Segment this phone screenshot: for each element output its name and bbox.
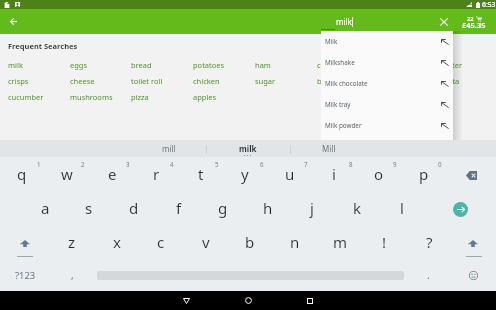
button[interactable]: milk [8, 60, 23, 70]
button[interactable]: x [95, 226, 139, 258]
staticText: e [108, 164, 117, 184]
staticText: b [245, 232, 255, 252]
button[interactable]: a [23, 192, 67, 224]
button[interactable]: i [312, 158, 356, 190]
button[interactable]: Milk [321, 31, 453, 52]
staticText: 7 [304, 160, 308, 168]
button[interactable]: cheese [70, 76, 95, 86]
button[interactable]: butter [440, 60, 462, 70]
button[interactable]: Clear search [431, 9, 456, 34]
button[interactable]: r [134, 158, 178, 190]
button[interactable]: Shift [451, 227, 495, 259]
button[interactable]: y [223, 158, 267, 190]
staticText: 4 [170, 160, 174, 168]
button[interactable]: sugar [255, 76, 276, 86]
staticText: mill [162, 143, 176, 154]
button[interactable]: l [380, 192, 424, 224]
button[interactable]: crisps [8, 76, 29, 86]
button[interactable]: Milk tray [321, 94, 453, 115]
staticText: 6:53 [482, 0, 496, 9]
button[interactable]: t [179, 158, 223, 190]
staticText: 9 [393, 160, 397, 168]
button[interactable]: cheese [317, 60, 342, 70]
button[interactable]: Back [172, 291, 200, 310]
button[interactable]: p [402, 158, 446, 190]
staticText: z [68, 232, 76, 252]
staticText: d [129, 198, 139, 218]
button[interactable]: pizza [131, 92, 149, 102]
button[interactable]: toilet roll [131, 76, 163, 86]
staticText: j [310, 198, 314, 218]
button[interactable]: ham [255, 60, 271, 70]
button[interactable]: u [268, 158, 312, 190]
button[interactable]: q [0, 158, 44, 190]
button[interactable]: Home [234, 291, 262, 310]
button[interactable]: g [201, 192, 245, 224]
button[interactable]: 22 [454, 9, 494, 34]
staticText: cucumber [8, 92, 44, 102]
staticText: bread [131, 60, 152, 70]
button[interactable]: Milk powder [321, 115, 453, 136]
staticText: chicken [193, 76, 220, 86]
staticText: o [374, 164, 384, 184]
staticText: q [17, 164, 27, 184]
staticText: 2 [81, 160, 85, 168]
button[interactable]: potatoes [193, 60, 225, 70]
button[interactable]: Emoji [451, 259, 495, 291]
staticText: r [153, 164, 160, 184]
button[interactable]: j [290, 192, 334, 224]
staticText: s [85, 198, 93, 218]
button[interactable]: e [90, 158, 134, 190]
button[interactable]: Recents [296, 291, 324, 310]
button[interactable]: Search [438, 193, 482, 225]
staticText: i [332, 164, 336, 184]
button[interactable]: eggs [70, 60, 88, 70]
staticText: m [333, 232, 348, 252]
staticText: apples [193, 92, 217, 102]
button[interactable]: mushrooms [70, 92, 113, 102]
button[interactable]: cucumber [8, 92, 44, 102]
button[interactable]: o [357, 158, 401, 190]
button[interactable]: pasta [440, 76, 460, 86]
button[interactable]: apples [193, 92, 217, 102]
button[interactable]: Back [1, 9, 26, 34]
button[interactable]: Backspace [449, 159, 493, 191]
button[interactable]: ? [407, 226, 451, 258]
staticText: Milk chocolate [325, 79, 368, 88]
button[interactable]: bread [131, 60, 152, 70]
button[interactable]: chicken [193, 76, 220, 86]
staticText: 3 [126, 160, 130, 168]
button[interactable]: Milkshake [321, 52, 453, 73]
staticText: y [241, 164, 249, 184]
button[interactable]: k [335, 192, 379, 224]
button[interactable]: bacon [317, 76, 339, 86]
staticText: 1 [37, 160, 41, 168]
staticText: milk [8, 60, 23, 70]
button[interactable]: z [50, 226, 94, 258]
button[interactable]: Shift [3, 227, 47, 259]
button[interactable]: c [139, 226, 183, 258]
button[interactable]: s [67, 192, 111, 224]
button[interactable]: d [112, 192, 156, 224]
button[interactable]: f [157, 192, 201, 224]
button[interactable]: , [50, 259, 94, 291]
staticText: ?123 [15, 269, 36, 282]
button[interactable]: w [45, 158, 89, 190]
button[interactable]: Milk chocolate [321, 73, 453, 94]
staticText: pizza [131, 92, 149, 102]
staticText: crisps [8, 76, 29, 86]
staticText: l [400, 198, 404, 218]
button[interactable]: ! [362, 226, 406, 258]
staticText: f [176, 198, 182, 218]
staticText: 5 [215, 160, 219, 168]
button[interactable]: v [184, 226, 228, 258]
button[interactable]: . [406, 259, 450, 291]
button[interactable]: n [273, 226, 317, 258]
button[interactable]: ?123 [3, 259, 47, 291]
button[interactable]: b [228, 226, 272, 258]
button[interactable]: m [318, 226, 362, 258]
button[interactable]: h [246, 192, 290, 224]
